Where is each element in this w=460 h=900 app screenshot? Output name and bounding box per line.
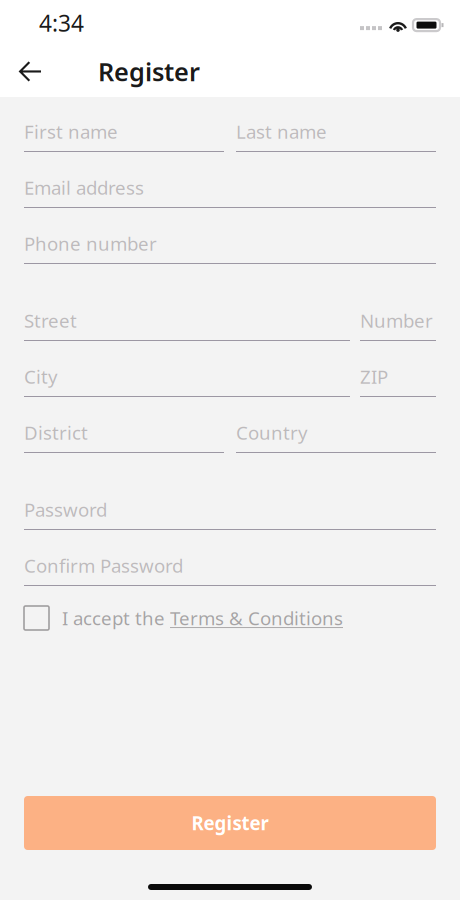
staticText: Register — [98, 55, 200, 88]
staticText: Password — [24, 497, 107, 522]
staticText: ZIP — [360, 364, 388, 389]
button[interactable]: Back — [6, 46, 54, 97]
staticText: Number — [360, 308, 433, 333]
button[interactable]: I accept the — [24, 599, 436, 637]
staticText: Email address — [24, 175, 144, 200]
staticText: Confirm Password — [24, 553, 183, 578]
staticText: I accept the — [62, 606, 165, 630]
staticText: Register — [191, 811, 268, 835]
button[interactable]: Register — [24, 796, 436, 850]
staticText: Street — [24, 308, 77, 333]
staticText: District — [24, 420, 88, 445]
staticText: City — [24, 364, 58, 389]
staticText: First name — [24, 119, 118, 144]
staticText: Country — [236, 420, 308, 445]
staticText: 4:34 — [39, 8, 84, 38]
staticText: Terms & Conditions — [170, 606, 343, 630]
staticText: Phone number — [24, 231, 157, 256]
staticText: Last name — [236, 119, 327, 144]
